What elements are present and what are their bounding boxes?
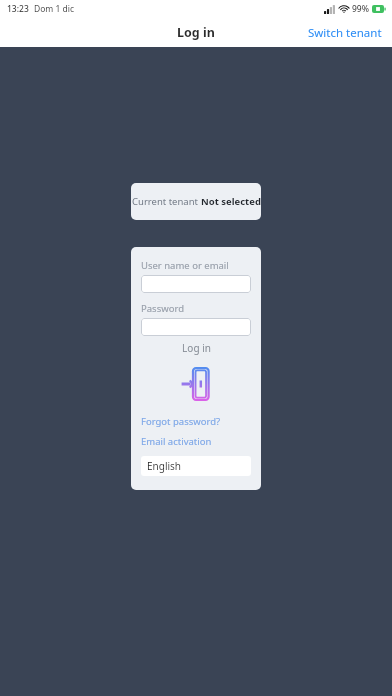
button[interactable]: Log in (141, 341, 251, 355)
staticText: 99% (352, 3, 369, 15)
staticText: English (147, 459, 182, 473)
staticText: Switch tenant (308, 25, 382, 41)
staticText: Log in (177, 24, 215, 41)
staticText: Log in (182, 341, 211, 355)
staticText: Current tenant (132, 195, 201, 208)
staticText: Email activation (141, 435, 212, 448)
button[interactable]: Log in (181, 366, 211, 402)
staticText: Not selected (201, 195, 261, 208)
button[interactable] (141, 318, 251, 336)
staticText: Password (141, 302, 184, 315)
button[interactable]: English (141, 456, 251, 476)
button[interactable]: Email activation (141, 435, 212, 448)
staticText: Forgot password? (141, 415, 221, 428)
button[interactable]: Forgot password? (141, 415, 221, 428)
button[interactable] (141, 275, 251, 293)
staticText: 13:23 (7, 3, 29, 15)
button[interactable]: Switch tenant (298, 20, 392, 46)
staticText: User name or email (141, 259, 229, 272)
button[interactable]: Current tenant (131, 183, 261, 220)
staticText: Dom 1 dic (34, 3, 75, 15)
